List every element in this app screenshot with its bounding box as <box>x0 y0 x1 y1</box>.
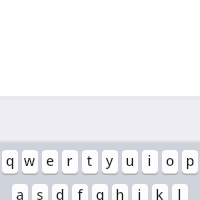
staticText: d <box>55 185 64 200</box>
staticText: f <box>77 185 82 200</box>
staticText: q <box>5 151 14 170</box>
staticText: p <box>185 151 194 170</box>
button[interactable]: k <box>152 184 168 200</box>
staticText: y <box>105 151 113 170</box>
button[interactable]: e <box>42 150 58 173</box>
staticText: s <box>36 185 43 200</box>
button[interactable]: d <box>52 184 68 200</box>
button[interactable]: f <box>72 184 88 200</box>
button[interactable]: i <box>142 150 158 173</box>
button[interactable]: p <box>182 150 198 173</box>
staticText: j <box>137 185 141 200</box>
button[interactable]: u <box>122 150 138 173</box>
staticText: w <box>23 151 35 170</box>
button[interactable]: o <box>162 150 178 173</box>
button[interactable]: j <box>132 184 148 200</box>
button[interactable]: r <box>62 150 78 173</box>
button[interactable]: l <box>172 184 188 200</box>
button[interactable]: g <box>92 184 108 200</box>
staticText: l <box>177 185 181 200</box>
staticText: t <box>86 151 92 170</box>
staticText: i <box>147 151 151 170</box>
staticText: r <box>66 151 72 170</box>
button[interactable]: t <box>82 150 98 173</box>
staticText: h <box>115 185 124 200</box>
button[interactable]: q <box>2 150 18 173</box>
button[interactable]: s <box>32 184 48 200</box>
button[interactable]: h <box>112 184 128 200</box>
button[interactable]: y <box>102 150 118 173</box>
staticText: e <box>45 151 54 170</box>
staticText: a <box>15 185 24 200</box>
staticText: k <box>155 185 163 200</box>
staticText: g <box>95 185 104 200</box>
button[interactable]: a <box>12 184 28 200</box>
staticText: u <box>125 151 134 170</box>
button[interactable]: w <box>22 150 38 173</box>
staticText: o <box>165 151 174 170</box>
